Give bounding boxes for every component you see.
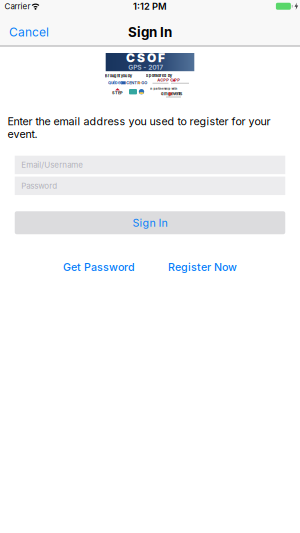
- staticText: Québec: [108, 80, 122, 85]
- staticText: Carrier: [4, 1, 30, 11]
- staticText: Sponsored by: [146, 73, 172, 78]
- staticText: C S O F: [126, 51, 165, 65]
- staticText: Password: [21, 181, 57, 190]
- staticText: Enter the email address you used to regi…: [7, 115, 270, 140]
- staticText: Register Now: [168, 261, 237, 273]
- button[interactable]: Email/Username: [15, 156, 285, 174]
- staticText: In partnership with: [149, 87, 177, 90]
- staticText: Email/Username: [21, 160, 83, 170]
- staticText: Brought you by: [105, 73, 132, 78]
- button[interactable]: Password: [15, 177, 285, 195]
- button[interactable]: Register Now: [168, 261, 237, 273]
- staticText: events: [171, 91, 182, 96]
- button[interactable]: Sign In: [15, 211, 285, 234]
- staticText: Cancel: [9, 25, 49, 39]
- button[interactable]: Get Password: [63, 261, 135, 273]
- staticText: STEP: [112, 90, 123, 95]
- button[interactable]: Cancel: [0, 17, 49, 47]
- staticText: Get Password: [63, 261, 135, 273]
- staticText: dmg: [161, 91, 171, 96]
- staticText: GPS - 2017: [128, 63, 163, 71]
- staticText: Sign In: [132, 216, 167, 229]
- staticText: Sign In: [128, 24, 172, 40]
- staticText: ACPP C PP: [157, 78, 180, 82]
- staticText: 1:12 PM: [133, 1, 167, 12]
- staticText: CENTR GO: [126, 80, 147, 85]
